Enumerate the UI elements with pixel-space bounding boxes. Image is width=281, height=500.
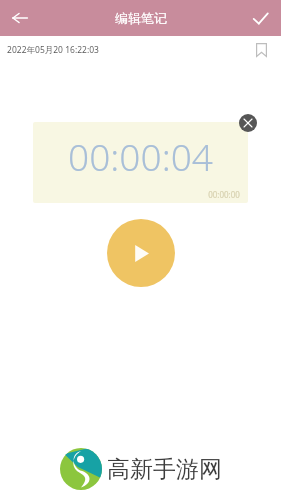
- button[interactable]: Bookmark: [249, 38, 273, 62]
- staticText: 高新手游网: [107, 455, 222, 484]
- staticText: 编辑笔记: [115, 10, 167, 26]
- button[interactable]: Close: [239, 114, 257, 132]
- button[interactable]: Start timer: [107, 219, 175, 287]
- staticText: 2022年05月20 16:22:03: [7, 44, 99, 56]
- button[interactable]: Save: [244, 2, 276, 34]
- button[interactable]: 00:00:04: [33, 122, 248, 203]
- staticText: 00:00:04: [68, 131, 213, 181]
- staticText: 00:00:00: [208, 189, 240, 200]
- button[interactable]: Back: [3, 1, 37, 35]
